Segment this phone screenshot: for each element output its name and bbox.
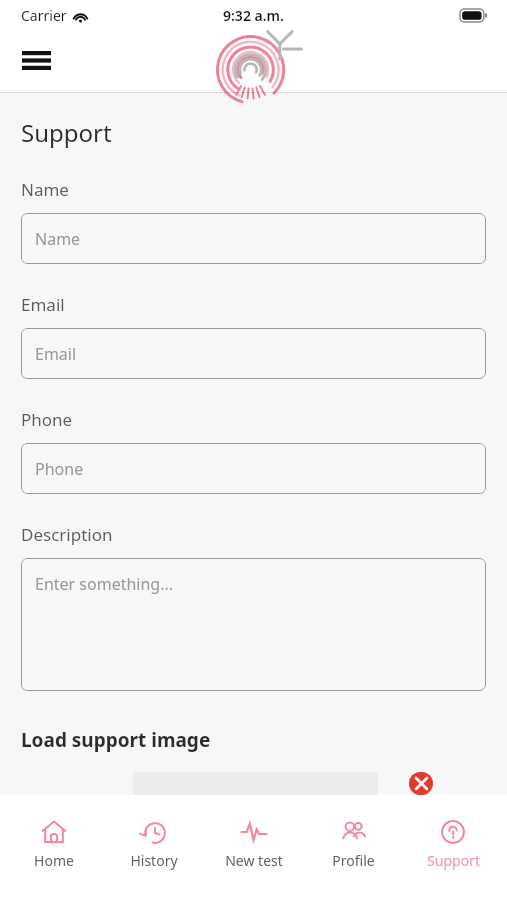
button[interactable]: Remove image — [409, 772, 433, 795]
staticText: Name — [21, 178, 69, 201]
staticText: Home — [34, 851, 74, 870]
button[interactable]: Phone — [21, 443, 486, 494]
staticText: Carrier — [21, 6, 67, 25]
button[interactable]: Home — [8, 817, 100, 872]
button[interactable]: Menu — [12, 36, 60, 84]
button[interactable]: Profile — [307, 817, 399, 872]
staticText: Email — [35, 343, 77, 365]
staticText: Description — [21, 523, 113, 546]
button[interactable]: New test — [208, 817, 300, 872]
staticText: Support — [427, 851, 480, 870]
staticText: Phone — [35, 458, 84, 480]
staticText: Enter something... — [35, 573, 174, 595]
button[interactable]: Email — [21, 328, 486, 379]
button[interactable]: Enter something... — [21, 558, 486, 691]
staticText: Phone — [21, 408, 73, 431]
staticText: New test — [225, 851, 283, 870]
button[interactable]: Name — [21, 213, 486, 264]
staticText: Profile — [332, 851, 375, 870]
staticText: History — [130, 851, 178, 870]
staticText: 9:32 a.m. — [223, 6, 284, 25]
staticText: Name — [35, 228, 81, 250]
button[interactable]: Support — [407, 817, 499, 872]
staticText: Support — [21, 116, 112, 149]
staticText: Email — [21, 293, 65, 316]
button[interactable]: History — [108, 817, 200, 872]
staticText: Load support image — [21, 727, 211, 753]
